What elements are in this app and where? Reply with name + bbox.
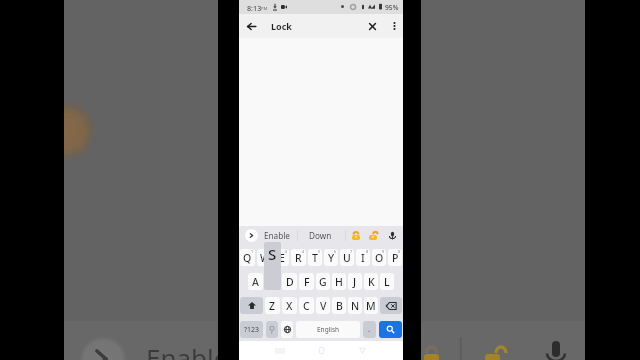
staticText: E bbox=[279, 251, 285, 265]
button[interactable]: H bbox=[332, 273, 346, 290]
button[interactable]: K bbox=[364, 273, 378, 290]
staticText: 5 bbox=[318, 249, 321, 254]
button[interactable]: Backspace bbox=[380, 297, 402, 314]
button[interactable]: D bbox=[282, 273, 297, 290]
staticText: 1 bbox=[251, 249, 254, 254]
button[interactable]: English bbox=[296, 321, 360, 338]
staticText: Z bbox=[269, 299, 276, 313]
button[interactable]: Voice input bbox=[385, 226, 399, 245]
staticText: 8 bbox=[366, 249, 369, 254]
staticText: . bbox=[368, 323, 371, 334]
button[interactable]: Search bbox=[379, 321, 402, 338]
button[interactable]: M bbox=[364, 297, 378, 314]
staticText: A bbox=[252, 275, 259, 289]
button[interactable]: Locked emoji bbox=[347, 226, 364, 245]
button[interactable]: Z bbox=[265, 297, 280, 314]
staticText: English bbox=[317, 325, 340, 334]
staticText: K bbox=[368, 275, 375, 289]
button[interactable]: Down bbox=[302, 226, 339, 245]
staticText: Q bbox=[243, 251, 252, 265]
button[interactable]: Navigate up bbox=[241, 14, 261, 38]
staticText: Down bbox=[308, 340, 379, 360]
staticText: N bbox=[351, 299, 360, 313]
button[interactable]: I bbox=[356, 249, 370, 266]
button[interactable]: Q bbox=[240, 249, 255, 266]
staticText: I bbox=[361, 251, 365, 265]
staticText: X bbox=[286, 299, 293, 313]
button[interactable]: A bbox=[248, 273, 263, 290]
staticText: 6 bbox=[334, 249, 337, 254]
staticText: Enable bbox=[146, 340, 229, 360]
button[interactable]: C bbox=[299, 297, 314, 314]
button[interactable]: Unlocked emoji bbox=[364, 226, 381, 245]
staticText: P bbox=[392, 251, 399, 265]
staticText: 3 bbox=[285, 249, 288, 254]
staticText: 0 bbox=[398, 249, 401, 254]
staticText: D bbox=[286, 275, 294, 289]
button[interactable]: L bbox=[380, 273, 394, 290]
staticText: S bbox=[268, 244, 277, 264]
staticText: T bbox=[312, 251, 318, 265]
button[interactable]: T bbox=[308, 249, 322, 266]
button[interactable]: J bbox=[348, 273, 362, 290]
staticText: Down bbox=[309, 230, 332, 241]
staticText: F bbox=[304, 275, 310, 289]
staticText: 9 bbox=[382, 249, 385, 254]
button[interactable]: Close bbox=[362, 14, 382, 38]
staticText: V bbox=[320, 299, 327, 313]
button[interactable]: Home bbox=[312, 341, 330, 360]
staticText: J bbox=[353, 275, 357, 289]
staticText: L bbox=[384, 275, 390, 289]
button[interactable]: Expand suggestions bbox=[245, 229, 258, 242]
staticText: 7 bbox=[350, 249, 353, 254]
staticText: B bbox=[336, 299, 343, 313]
button[interactable]: Enable bbox=[260, 226, 294, 245]
button[interactable]: Recent apps bbox=[271, 341, 289, 360]
staticText: G bbox=[319, 275, 327, 289]
button[interactable]: . bbox=[363, 321, 376, 338]
button[interactable]: Shift bbox=[240, 297, 263, 314]
button[interactable]: U bbox=[340, 249, 354, 266]
staticText: ?123 bbox=[244, 325, 260, 335]
button[interactable]: Y bbox=[324, 249, 338, 266]
staticText: PM bbox=[261, 5, 268, 11]
staticText: 95% bbox=[385, 3, 399, 12]
button[interactable]: O bbox=[372, 249, 386, 266]
staticText: M bbox=[366, 299, 376, 313]
staticText: Y bbox=[328, 251, 335, 265]
button[interactable]: W bbox=[257, 249, 272, 266]
button[interactable]: G bbox=[316, 273, 330, 290]
staticText: R bbox=[295, 251, 302, 265]
button[interactable]: ?123 bbox=[240, 321, 263, 338]
button[interactable]: V bbox=[316, 297, 330, 314]
button[interactable]: X bbox=[282, 297, 297, 314]
button[interactable]: B bbox=[332, 297, 346, 314]
staticText: Enable bbox=[264, 230, 290, 241]
staticText: 4 bbox=[302, 249, 305, 254]
button[interactable]: E bbox=[274, 249, 289, 266]
staticText: U bbox=[343, 251, 351, 265]
button[interactable]: Change language bbox=[281, 321, 293, 338]
staticText: 2 bbox=[268, 249, 271, 254]
button[interactable]: Back bbox=[353, 341, 371, 360]
staticText: 8:13 bbox=[247, 3, 262, 13]
staticText: C bbox=[303, 299, 310, 313]
staticText: Lock bbox=[271, 20, 292, 32]
staticText: H bbox=[335, 275, 343, 289]
button[interactable]: N bbox=[348, 297, 362, 314]
button[interactable]: F bbox=[299, 273, 314, 290]
staticText: O bbox=[375, 251, 384, 265]
button[interactable]: Emoji bbox=[266, 321, 278, 338]
staticText: W bbox=[260, 251, 270, 265]
button[interactable]: More options bbox=[385, 14, 403, 38]
button[interactable]: P bbox=[388, 249, 402, 266]
button[interactable]: R bbox=[291, 249, 306, 266]
